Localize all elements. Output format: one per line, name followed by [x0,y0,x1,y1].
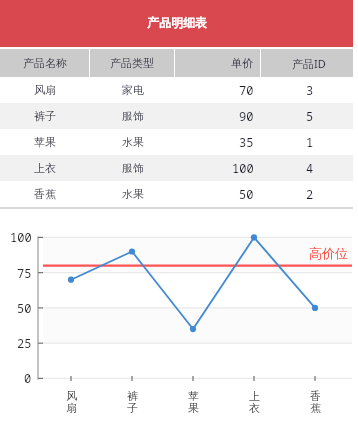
staticText: 水果 [122,187,144,201]
staticText: 5 [306,108,314,124]
button[interactable]: 产品名称 [0,49,89,77]
staticText: 风 [66,389,77,401]
staticText: 50 [239,186,254,202]
staticText: 香 [310,389,321,401]
staticText: 1 [306,134,314,150]
staticText: 2 [306,186,314,202]
staticText: 0 [24,370,32,386]
staticText: 子 [127,401,138,413]
staticText: 50 [17,300,32,316]
button[interactable]: 风扇 [0,77,353,103]
staticText: 单价 [231,56,253,70]
staticText: 上衣 [34,161,56,175]
staticText: 服饰 [122,161,144,175]
button[interactable]: 上衣 [0,155,353,181]
staticText: 3 [306,82,314,98]
button[interactable]: 高价位 threshold [309,245,348,261]
staticText: 35 [239,134,254,150]
staticText: 产品类型 [110,56,154,70]
staticText: 蕉 [310,401,321,413]
staticText: 苹 [188,389,199,401]
button[interactable]: 苹果 [0,129,353,155]
staticText: 果 [188,401,199,413]
staticText: 产品ID [292,56,326,71]
button[interactable]: 单价 [175,49,260,77]
staticText: 服饰 [122,109,144,123]
button[interactable]: 裤子 [0,103,353,129]
staticText: 上 [249,389,260,401]
staticText: 100 [232,160,254,176]
staticText: 家电 [122,83,144,97]
staticText: 裤 [127,389,138,401]
staticText: 裤子 [34,109,56,123]
staticText: 70 [239,82,254,98]
staticText: 高价位 [309,245,348,261]
staticText: 水果 [122,135,144,149]
button[interactable]: 香蕉 [0,181,353,207]
staticText: 100 [10,229,32,245]
staticText: 产品名称 [23,56,67,70]
staticText: 产品明细表 [147,15,207,30]
button[interactable]: 产品ID [261,49,353,77]
button[interactable]: 产品类型 [90,49,174,77]
staticText: 苹果 [34,135,56,149]
staticText: 25 [17,335,32,351]
staticText: 90 [239,108,254,124]
staticText: 风扇 [34,83,56,97]
staticText: 香蕉 [34,187,56,201]
button[interactable]: 产品明细表 [0,0,353,47]
staticText: 75 [17,265,32,281]
staticText: 4 [306,160,314,176]
staticText: 扇 [66,401,77,413]
staticText: 衣 [249,401,260,413]
